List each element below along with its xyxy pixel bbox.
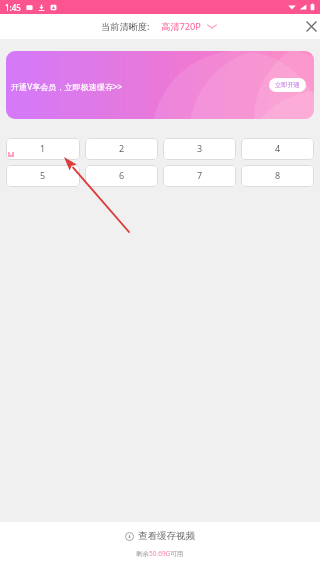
staticText: 8 <box>275 169 281 181</box>
staticText: 1:45 <box>5 2 21 13</box>
staticText: 剩余50.69G可用 <box>136 549 184 558</box>
staticText: 立即开通 <box>275 81 300 89</box>
button[interactable]: 8 <box>241 165 314 187</box>
staticText: 5 <box>40 169 46 181</box>
staticText: 7 <box>197 169 203 181</box>
button[interactable]: 7 <box>163 165 236 187</box>
button[interactable]: 2 <box>85 138 158 160</box>
button[interactable]: Close <box>303 14 320 39</box>
staticText: 4 <box>275 142 281 154</box>
button[interactable]: 开通V享会员，立即极速缓存>> <box>6 51 314 119</box>
staticText: 开通V享会员，立即极速缓存>> <box>11 81 123 92</box>
staticText: 1 <box>40 142 46 154</box>
button[interactable]: 3 <box>163 138 236 160</box>
button[interactable]: 1 <box>6 138 80 160</box>
button[interactable]: 5 <box>6 165 80 187</box>
button[interactable]: 查看缓存视频 <box>119 529 201 543</box>
staticText: 6 <box>119 169 125 181</box>
button[interactable]: 6 <box>85 165 158 187</box>
button[interactable]: 高清720P <box>159 17 219 36</box>
button[interactable]: 4 <box>241 138 314 160</box>
staticText: 高清720P <box>161 20 201 33</box>
staticText: 当前清晰度: <box>101 20 150 33</box>
staticText: 3 <box>197 142 203 154</box>
staticText: 2 <box>119 142 125 154</box>
button[interactable]: 立即开通 <box>269 78 306 92</box>
staticText: 查看缓存视频 <box>138 530 195 542</box>
